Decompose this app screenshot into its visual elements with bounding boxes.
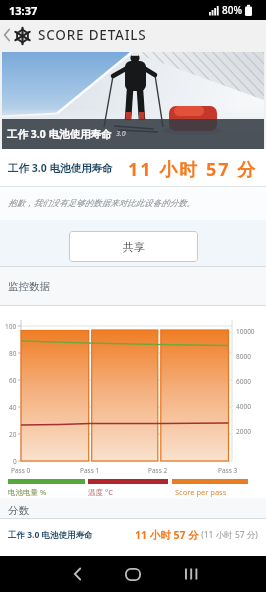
button[interactable]: SCORE DETAILS — [0, 20, 266, 50]
staticText: Pass 2 — [148, 466, 168, 475]
button[interactable] — [66, 565, 88, 583]
staticText: Score per pass — [175, 487, 227, 497]
staticText: 共享 — [123, 240, 145, 254]
staticText: 10000 — [236, 327, 255, 336]
staticText: Pass 1 — [80, 466, 100, 475]
staticText: 60 — [9, 376, 17, 385]
button[interactable]: 共享 — [69, 231, 198, 262]
button[interactable] — [180, 565, 202, 583]
staticText: 抱歉，我们没有足够的数据来对比此设备的分数。 — [8, 198, 195, 209]
staticText: 11 小时 57 分 — [135, 528, 199, 542]
staticText: 100 — [5, 322, 17, 331]
staticText: 80 — [9, 349, 17, 358]
staticText: 温度 °C — [88, 487, 113, 497]
staticText: 8000 — [236, 352, 251, 361]
staticText: 3.0 — [116, 129, 126, 139]
staticText: (11 小时 57 分) — [199, 529, 258, 541]
button[interactable] — [122, 565, 144, 583]
staticText: 20 — [9, 430, 17, 439]
staticText: Pass 3 — [218, 466, 238, 475]
staticText: Pass 0 — [11, 466, 31, 475]
staticText: 80% — [222, 3, 242, 17]
staticText: 电池电量 % — [8, 487, 47, 497]
staticText: 监控数据 — [8, 280, 50, 293]
staticText: 11 小时 57 分 — [128, 157, 258, 182]
staticText: 40 — [9, 403, 17, 412]
staticText: 工作 3.0 电池使用寿命 — [7, 127, 112, 141]
staticText: 2000 — [236, 427, 251, 436]
staticText: 分数 — [8, 504, 29, 517]
staticText: SCORE DETAILS — [38, 26, 147, 44]
staticText: 6000 — [236, 377, 251, 386]
staticText: 工作 3.0 电池使用寿命 — [8, 161, 113, 175]
staticText: 工作 3.0 电池使用寿命 — [8, 529, 93, 541]
staticText: 4000 — [236, 402, 251, 411]
staticText: 0 — [13, 457, 17, 466]
staticText: 13:37 — [9, 3, 38, 18]
